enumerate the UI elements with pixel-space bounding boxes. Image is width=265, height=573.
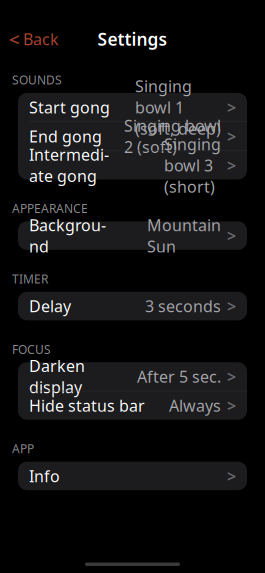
button[interactable]: Info: [18, 462, 247, 490]
staticText: Mountain Sun: [147, 214, 221, 257]
button[interactable]: Delay: [18, 292, 247, 320]
staticText: >: [227, 465, 236, 486]
button[interactable]: Start gong: [18, 93, 247, 122]
staticText: <: [9, 27, 20, 51]
button[interactable]: End gong: [18, 122, 247, 151]
staticText: APPEARANCE: [12, 200, 88, 216]
staticText: Singing bowl 3 (short): [164, 133, 221, 197]
staticText: Info: [29, 465, 60, 486]
button[interactable]: Intermediate gong: [18, 151, 247, 179]
staticText: Intermediate gong: [29, 144, 109, 186]
staticText: >: [227, 395, 236, 416]
staticText: Background: [29, 214, 106, 257]
staticText: Settings: [97, 27, 167, 50]
staticText: Singing bowl 2 (soft): [124, 115, 221, 157]
staticText: >: [227, 126, 236, 147]
staticText: APP: [12, 441, 34, 457]
staticText: 3 seconds: [145, 295, 221, 317]
staticText: TIMER: [12, 271, 48, 287]
staticText: >: [227, 155, 236, 176]
staticText: FOCUS: [12, 341, 51, 357]
button[interactable]: Background: [18, 221, 247, 250]
staticText: >: [227, 225, 236, 246]
staticText: >: [227, 366, 236, 387]
staticText: After 5 sec.: [137, 366, 221, 387]
staticText: Back: [23, 28, 59, 50]
staticText: Start gong: [29, 97, 110, 118]
button[interactable]: Hide status bar: [18, 391, 247, 420]
staticText: Delay: [29, 295, 71, 317]
staticText: Darken display: [29, 355, 85, 398]
staticText: SOUNDS: [12, 72, 62, 88]
staticText: Hide status bar: [29, 395, 145, 416]
staticText: End gong: [29, 126, 102, 147]
staticText: Singing bowl 1 (soft, deep): [135, 75, 221, 139]
staticText: >: [227, 97, 236, 118]
button[interactable]: Darken display: [18, 362, 247, 391]
staticText: >: [227, 295, 236, 317]
button[interactable]: <: [0, 21, 68, 57]
staticText: Always: [169, 395, 221, 416]
